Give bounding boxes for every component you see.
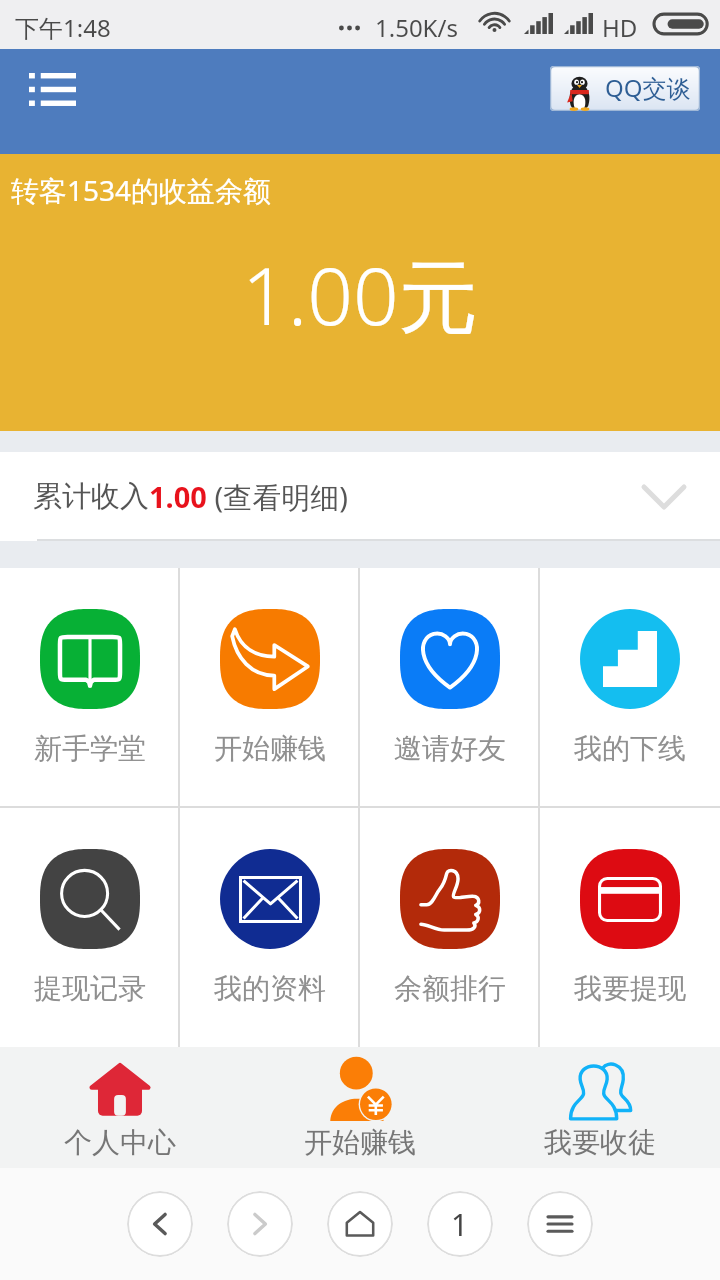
staticText: QQ交谈 [605,71,691,104]
staticText: 邀请好友 [394,731,506,766]
staticText: (查看明细) [207,477,348,517]
staticText: 我的下线 [574,731,686,766]
staticText: 开始赚钱 [304,1125,416,1160]
staticText: 开始赚钱 [214,731,326,766]
staticText: 我要提现 [574,971,686,1006]
staticText: 新手学堂 [34,731,146,766]
button[interactable]: 我的下线 [540,568,720,806]
button[interactable]: 新手学堂 [0,568,180,806]
button[interactable]: 个人中心 [0,1047,240,1168]
button[interactable]: 累计收入 [0,452,720,541]
staticText: 1 [451,1204,469,1245]
staticText: 余额排行 [394,971,506,1006]
button[interactable]: QQ交谈 [550,66,700,111]
staticText: 1.50K/s [375,11,458,44]
staticText: 1.00元 [242,239,479,348]
button[interactable]: Menu [14,60,90,118]
button[interactable]: Menu [527,1191,593,1257]
staticText: 我的资料 [214,971,326,1006]
button[interactable]: Forward [227,1191,293,1257]
button[interactable]: 提现记录 [0,808,180,1047]
staticText: 累计收入 [33,478,149,515]
staticText: 转客1534的收益余额 [11,171,272,209]
staticText: HD [602,11,638,44]
button[interactable]: 开始赚钱 [180,568,360,806]
button[interactable]: 开始赚钱 [240,1047,480,1168]
staticText: 下午1:48 [15,11,111,44]
button[interactable]: 我要收徒 [480,1047,720,1168]
staticText: 个人中心 [64,1125,176,1160]
button[interactable]: 邀请好友 [360,568,540,806]
button[interactable]: 我的资料 [180,808,360,1047]
staticText: 1.00 [149,477,207,516]
staticText: 提现记录 [34,971,146,1006]
button[interactable]: 1 [427,1191,493,1257]
button[interactable]: 我要提现 [540,808,720,1047]
button[interactable]: Home [327,1191,393,1257]
button[interactable]: 余额排行 [360,808,540,1047]
button[interactable]: Back [127,1191,193,1257]
staticText: 我要收徒 [544,1125,656,1160]
